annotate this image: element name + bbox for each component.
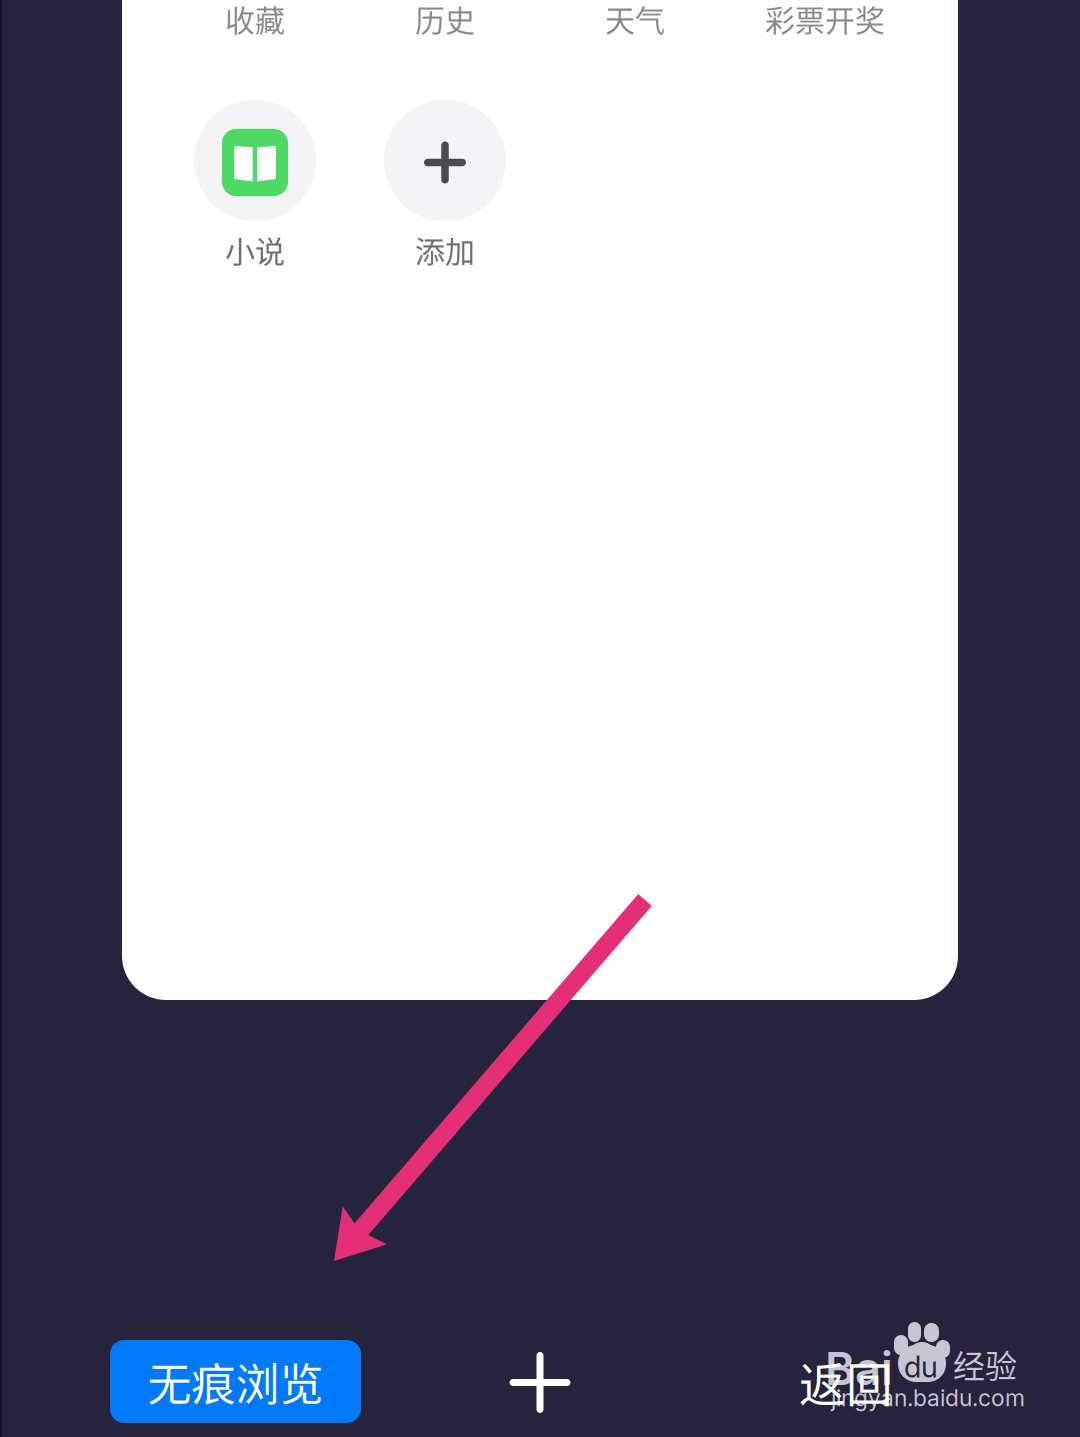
button[interactable]: 小说 <box>160 99 350 277</box>
staticText: jingyan.baidu.com <box>831 1384 1025 1412</box>
staticText: 返回 <box>799 1348 893 1415</box>
button[interactable]: 收藏 <box>160 0 350 50</box>
staticText: 历史 <box>415 0 475 40</box>
button[interactable]: 天气 <box>540 0 730 50</box>
staticText: 添加 <box>415 228 475 271</box>
button[interactable]: 历史 <box>350 0 540 50</box>
button[interactable]: 添加 <box>350 99 540 277</box>
staticText: Bai <box>825 1341 893 1396</box>
staticText: du <box>904 1349 938 1384</box>
staticText: 彩票开奖 <box>765 0 885 40</box>
button[interactable]: New tab <box>485 1341 595 1424</box>
staticText: 经验 <box>953 1341 1017 1387</box>
button[interactable]: 彩票开奖 <box>730 0 920 50</box>
button[interactable]: 无痕浏览 <box>110 1340 361 1423</box>
staticText: 小说 <box>225 228 285 271</box>
button[interactable]: 返回 <box>799 1340 979 1423</box>
staticText: 无痕浏览 <box>147 1350 323 1413</box>
staticText: 收藏 <box>225 0 285 40</box>
staticText: 天气 <box>605 0 665 40</box>
